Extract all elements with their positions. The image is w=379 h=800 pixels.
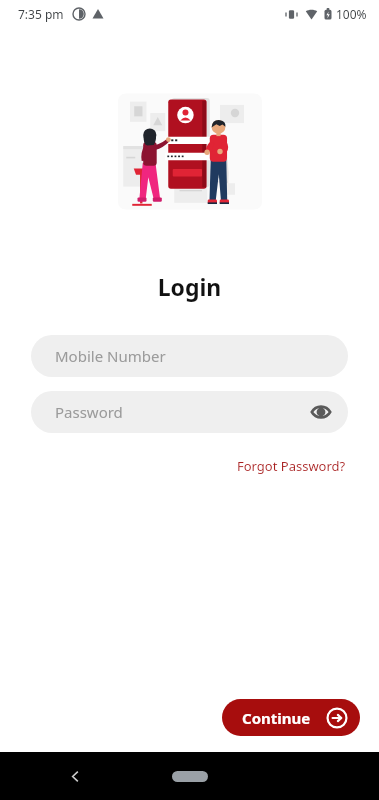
button[interactable]: Password — [31, 391, 348, 433]
staticText: Continue — [242, 708, 311, 728]
button[interactable]: Back — [62, 763, 88, 789]
button[interactable]: Mobile Number — [31, 335, 348, 377]
button[interactable]: Show password — [306, 397, 336, 427]
staticText: Login — [0, 271, 379, 302]
button[interactable]: Continue — [222, 699, 360, 736]
staticText: Forgot Password? — [237, 457, 346, 475]
button[interactable]: Forgot Password? — [235, 455, 348, 477]
staticText: Password — [55, 402, 123, 422]
staticText: Mobile Number — [55, 346, 166, 366]
button[interactable]: Home — [169, 761, 211, 791]
staticText: 100% — [336, 6, 367, 22]
staticText: 7:35 pm — [18, 6, 64, 22]
